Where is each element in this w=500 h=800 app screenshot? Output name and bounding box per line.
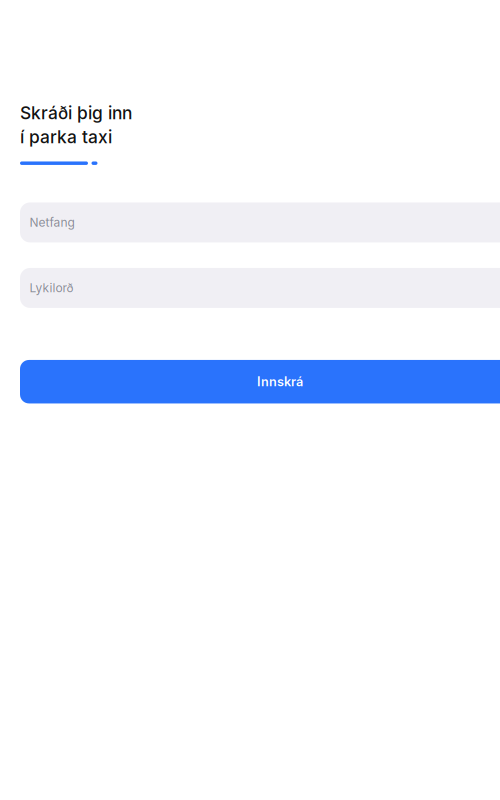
staticText: Skráði þig inn xyxy=(20,102,132,123)
staticText: í parka taxi xyxy=(20,126,112,147)
staticText: Lykilorð xyxy=(29,281,73,295)
staticText: Netfang xyxy=(29,215,74,230)
button[interactable]: Lykilorð xyxy=(20,268,500,308)
staticText: Innskrá xyxy=(257,374,303,389)
button[interactable]: Netfang xyxy=(20,202,500,242)
button[interactable]: Innskrá xyxy=(20,360,500,403)
